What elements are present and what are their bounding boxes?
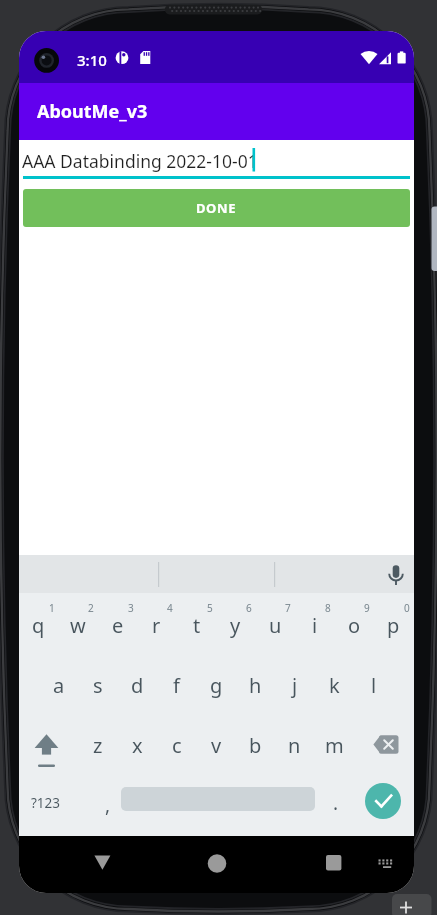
- button[interactable]: [89, 776, 128, 833]
- staticText: d: [131, 672, 144, 699]
- button[interactable]: f: [157, 657, 196, 714]
- staticText: 6: [246, 601, 252, 615]
- staticText: 3: [128, 601, 134, 615]
- button[interactable]: c: [157, 717, 196, 774]
- button[interactable]: AAA Databinding 2022-10-01: [22, 141, 410, 180]
- staticText: l: [371, 672, 377, 699]
- staticText: b: [249, 732, 262, 759]
- staticText: j: [292, 672, 298, 699]
- staticText: t: [193, 612, 201, 639]
- button[interactable]: a: [39, 657, 78, 714]
- staticText: AboutMe_v3: [37, 99, 148, 124]
- staticText: f: [173, 672, 180, 699]
- button[interactable]: o: [335, 597, 374, 654]
- staticText: w: [70, 612, 86, 639]
- staticText: u: [269, 612, 282, 639]
- staticText: n: [288, 732, 301, 759]
- button[interactable]: m: [315, 717, 354, 774]
- staticText: g: [210, 672, 223, 699]
- button[interactable]: h: [236, 657, 275, 714]
- staticText: m: [325, 732, 344, 759]
- staticText: z: [93, 732, 103, 759]
- button[interactable]: [19, 717, 78, 774]
- staticText: i: [312, 612, 318, 639]
- button[interactable]: y: [216, 597, 255, 654]
- staticText: q: [32, 612, 45, 639]
- button[interactable]: s: [78, 657, 117, 714]
- button[interactable]: [174, 841, 259, 891]
- staticText: 1: [49, 601, 55, 615]
- button[interactable]: p: [374, 597, 413, 654]
- button[interactable]: b: [236, 717, 275, 774]
- staticText: DONE: [196, 199, 237, 217]
- button[interactable]: [19, 555, 414, 593]
- staticText: o: [348, 612, 361, 639]
- staticText: c: [172, 732, 182, 759]
- staticText: y: [230, 612, 241, 639]
- staticText: v: [211, 732, 222, 759]
- staticText: k: [329, 672, 340, 699]
- button[interactable]: [316, 776, 355, 833]
- staticText: 0: [404, 601, 410, 615]
- button[interactable]: n: [275, 717, 314, 774]
- button[interactable]: t: [177, 597, 216, 654]
- button[interactable]: [79, 841, 164, 891]
- staticText: h: [249, 672, 262, 699]
- staticText: 2: [88, 601, 94, 615]
- staticText: 3:10: [77, 50, 107, 70]
- staticText: 9: [364, 601, 370, 615]
- button[interactable]: z: [78, 717, 117, 774]
- staticText: s: [93, 672, 103, 699]
- staticText: 4: [167, 601, 173, 615]
- staticText: 5: [207, 601, 213, 615]
- button[interactable]: d: [118, 657, 157, 714]
- button[interactable]: DONE: [23, 189, 410, 227]
- button[interactable]: w: [58, 597, 97, 654]
- button[interactable]: r: [137, 597, 176, 654]
- button[interactable]: q: [19, 597, 58, 654]
- button[interactable]: e: [98, 597, 137, 654]
- staticText: ,: [105, 792, 111, 818]
- staticText: e: [112, 612, 124, 639]
- button[interactable]: j: [275, 657, 314, 714]
- staticText: .: [333, 790, 339, 816]
- button[interactable]: u: [256, 597, 295, 654]
- button[interactable]: x: [118, 717, 157, 774]
- button[interactable]: [19, 776, 78, 833]
- button[interactable]: [287, 841, 372, 891]
- staticText: 7: [285, 601, 291, 615]
- button[interactable]: [355, 717, 414, 774]
- staticText: r: [152, 612, 161, 639]
- staticText: p: [387, 612, 400, 639]
- button[interactable]: k: [315, 657, 354, 714]
- staticText: AAA Databinding 2022-10-01: [22, 149, 258, 173]
- staticText: 8: [325, 601, 331, 615]
- button[interactable]: [365, 783, 401, 819]
- staticText: a: [53, 672, 65, 699]
- button[interactable]: v: [197, 717, 236, 774]
- staticText: x: [132, 732, 143, 759]
- button[interactable]: [379, 841, 414, 891]
- button[interactable]: i: [295, 597, 334, 654]
- button[interactable]: l: [354, 657, 393, 714]
- staticText: ?123: [31, 794, 61, 812]
- button[interactable]: g: [197, 657, 236, 714]
